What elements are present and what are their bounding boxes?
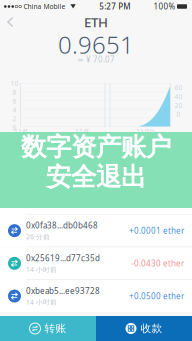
staticText: 0xbeab5...ee93728 [26, 286, 100, 296]
button[interactable]: 收款 [96, 316, 192, 341]
staticText: 11/6 [14, 127, 28, 136]
staticText: 转账 [44, 322, 66, 335]
staticText: 0 [176, 110, 180, 119]
button[interactable]: 0x0fa38...db0b468 [0, 215, 192, 247]
staticText: +0.0001 ether [129, 225, 184, 236]
staticText: 26 分前 [26, 232, 50, 241]
staticText: 4 [12, 105, 16, 114]
staticText: 5:27 PM [99, 1, 130, 12]
staticText: 20 [174, 101, 182, 110]
staticText: 0x25619...d77c35d [26, 253, 100, 263]
staticText: 10 [10, 79, 18, 88]
staticText: 2 [12, 114, 16, 123]
staticText: 0 [12, 123, 16, 132]
staticText: 8 [12, 88, 16, 97]
staticText: 6 [12, 97, 16, 105]
staticText: 60 [174, 83, 182, 92]
staticText: ≈ ¥ 70.07 [77, 54, 115, 65]
staticText: ETH [84, 13, 108, 31]
staticText: 0x60D79...3a34b21 [26, 187, 101, 198]
staticText: 100% [153, 1, 175, 12]
staticText: China Mobile [23, 2, 65, 11]
button[interactable]: Back [0, 13, 23, 31]
button[interactable]: 0x25619...d77c35d [0, 247, 192, 279]
staticText: 11/8 [75, 127, 89, 136]
staticText: 14 小时前 [26, 298, 57, 307]
staticText: -0.0430 ether [131, 258, 184, 269]
staticText: 最近交易记录 [8, 170, 56, 180]
button[interactable]: 0x60D79...3a34b21 [0, 182, 192, 214]
staticText: 0.9651 [58, 29, 134, 60]
staticText: +0.0500 ether [129, 291, 184, 301]
button[interactable]: 0xbeab5...ee93728 [0, 280, 192, 312]
staticText: 0x0fa38...db0b468 [26, 220, 98, 231]
staticText: 收款 [140, 322, 162, 335]
staticText: 数字资产账户 [21, 131, 171, 162]
staticText: 14 小时前 [26, 265, 57, 274]
button[interactable]: 转账 [0, 316, 96, 341]
staticText: 40 [174, 92, 182, 101]
staticText: 安全退出 [46, 161, 146, 192]
staticText: 11/10 [136, 127, 154, 136]
